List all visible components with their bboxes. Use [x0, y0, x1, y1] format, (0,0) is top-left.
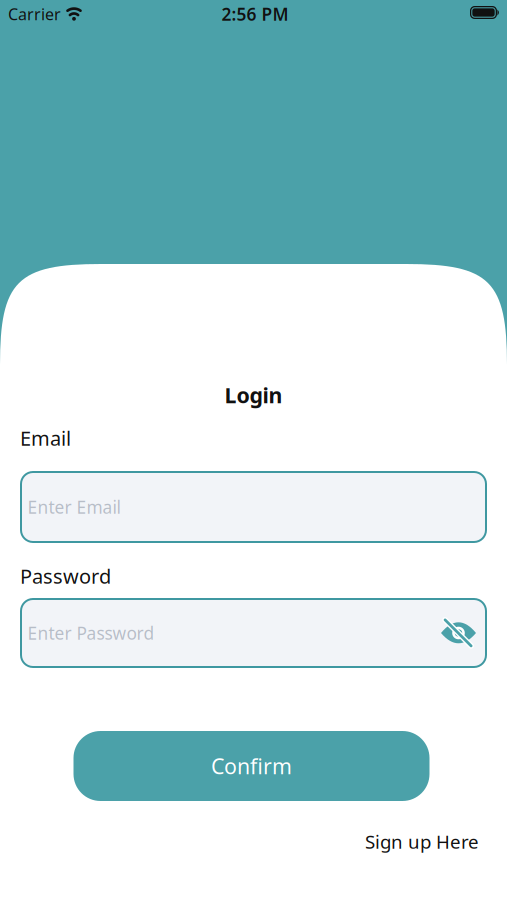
staticText: Login	[224, 381, 282, 409]
staticText: Email	[20, 425, 71, 451]
staticText: Password	[20, 563, 111, 589]
button[interactable]: Sign up Here	[365, 829, 479, 854]
staticText: Sign up Here	[365, 829, 479, 854]
staticText: Enter Password	[27, 621, 154, 644]
staticText: 2:56 PM	[221, 2, 288, 25]
button[interactable]: Show password	[440, 619, 476, 646]
staticText: Carrier	[8, 3, 61, 25]
staticText: Enter Email	[27, 495, 120, 518]
staticText: Confirm	[211, 752, 292, 780]
button[interactable]: Confirm	[73, 731, 429, 801]
